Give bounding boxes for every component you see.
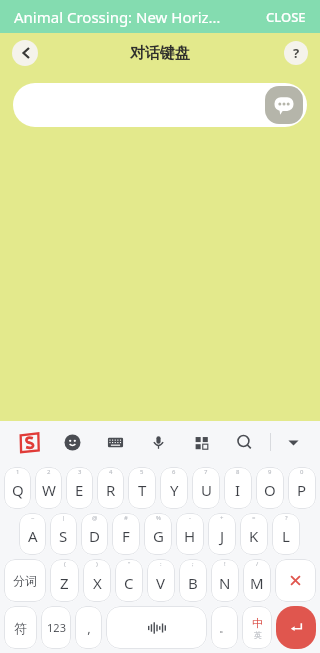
staticText: 9 xyxy=(268,468,272,476)
staticText: CLOSE xyxy=(266,8,306,26)
staticText: ; xyxy=(192,560,194,568)
staticText: V xyxy=(156,573,166,593)
button[interactable]: # xyxy=(112,513,140,555)
staticText: 。 xyxy=(219,621,230,635)
button[interactable]: Switch language xyxy=(242,606,272,649)
button[interactable]: Delete xyxy=(275,559,316,602)
button[interactable]: = xyxy=(240,513,268,555)
button[interactable]: ( xyxy=(50,559,79,602)
button[interactable]: 。 xyxy=(211,606,238,649)
button[interactable]: Keyboard layout xyxy=(98,425,132,459)
button[interactable]: 1 xyxy=(4,467,31,509)
staticText: 英 xyxy=(254,630,262,640)
staticText: R xyxy=(106,480,116,500)
button[interactable]: 4 xyxy=(97,467,124,509)
button[interactable]: Enter xyxy=(276,606,316,649)
button[interactable]: Send message xyxy=(265,86,303,124)
button[interactable]: @ xyxy=(81,513,108,555)
staticText: 123 xyxy=(47,620,66,635)
staticText: U xyxy=(201,480,212,500)
staticText: | xyxy=(62,514,66,522)
button[interactable]: " xyxy=(115,559,143,602)
staticText: Y xyxy=(170,480,179,500)
staticText: J xyxy=(220,526,225,546)
button[interactable]: 0 xyxy=(288,467,316,509)
button[interactable]: Send message xyxy=(13,83,307,127)
button[interactable]: Emoji xyxy=(55,425,89,459)
button[interactable]: 8 xyxy=(224,467,252,509)
button[interactable]: 5 xyxy=(128,467,156,509)
button[interactable]: 6 xyxy=(160,467,188,509)
staticText: 7 xyxy=(204,468,208,476)
staticText: : xyxy=(160,560,162,568)
staticText: % xyxy=(156,514,161,522)
staticText: M xyxy=(250,573,264,593)
button[interactable]: 7 xyxy=(192,467,220,509)
staticText: E xyxy=(75,480,84,500)
staticText: Q xyxy=(12,480,24,500)
button[interactable]: ? xyxy=(272,513,300,555)
button[interactable]: More features xyxy=(184,425,218,459)
staticText: I xyxy=(235,480,241,500)
staticText: 6 xyxy=(172,468,176,476)
staticText: T xyxy=(138,480,147,500)
staticText: Animal Crossing: New Horiz… xyxy=(14,7,221,27)
staticText: 分词 xyxy=(13,573,37,588)
staticText: B xyxy=(188,573,198,593)
staticText: 0 xyxy=(300,468,304,476)
staticText: S xyxy=(59,526,68,546)
staticText: ! xyxy=(224,560,226,568)
button[interactable]: 符 xyxy=(4,606,37,649)
staticText: P xyxy=(297,480,307,500)
staticText: 8 xyxy=(236,468,240,476)
button[interactable]: ! xyxy=(211,559,239,602)
staticText: ? xyxy=(293,44,300,62)
button[interactable]: 分词 xyxy=(4,559,46,602)
staticText: ~ xyxy=(31,514,35,522)
staticText: A xyxy=(28,526,38,546)
button[interactable]: / xyxy=(243,559,271,602)
button[interactable]: ) xyxy=(83,559,111,602)
button[interactable]: CLOSE xyxy=(262,4,310,30)
button[interactable]: 3 xyxy=(66,467,93,509)
staticText: O xyxy=(264,480,276,500)
staticText: N xyxy=(219,573,231,593)
staticText: 5 xyxy=(140,468,144,476)
staticText: C xyxy=(124,573,134,593)
staticText: ) xyxy=(96,560,98,568)
button[interactable]: 2 xyxy=(35,467,62,509)
staticText: F xyxy=(122,526,130,546)
staticText: " xyxy=(128,560,131,568)
button[interactable]: Search xyxy=(227,425,261,459)
staticText: D xyxy=(89,526,100,546)
button[interactable]: Hide keyboard xyxy=(276,425,310,459)
button[interactable]: + xyxy=(208,513,236,555)
staticText: H xyxy=(184,526,196,546)
button[interactable]: - xyxy=(176,513,204,555)
staticText: Z xyxy=(60,573,69,593)
button[interactable]: Help xyxy=(284,41,308,65)
staticText: + xyxy=(220,514,224,522)
button[interactable]: Back xyxy=(12,40,38,66)
button[interactable]: | xyxy=(50,513,77,555)
staticText: 2 xyxy=(47,468,51,476)
button[interactable]: 123 xyxy=(41,606,71,649)
button[interactable]: 9 xyxy=(256,467,284,509)
button[interactable]: Space xyxy=(106,606,207,649)
button[interactable]: % xyxy=(144,513,172,555)
staticText: @ xyxy=(92,514,98,522)
staticText: 4 xyxy=(109,468,113,476)
button[interactable]: ~ xyxy=(19,513,46,555)
button[interactable]: , xyxy=(75,606,102,649)
staticText: = xyxy=(252,514,256,522)
staticText: 3 xyxy=(78,468,82,476)
button[interactable]: ; xyxy=(179,559,207,602)
staticText: - xyxy=(189,514,191,522)
staticText: L xyxy=(282,526,290,546)
button[interactable]: : xyxy=(147,559,175,602)
button[interactable]: Sogou input xyxy=(12,425,46,459)
staticText: G xyxy=(153,526,164,546)
staticText: W xyxy=(42,480,56,500)
button[interactable]: Voice input xyxy=(141,425,175,459)
staticText: K xyxy=(249,526,259,546)
